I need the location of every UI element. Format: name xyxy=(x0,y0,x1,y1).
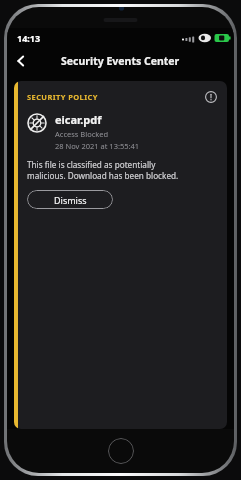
staticText: This file is classified as potentially m… xyxy=(27,159,179,181)
staticText: eicar.pdf xyxy=(55,112,102,127)
staticText: Dismiss xyxy=(54,194,87,206)
staticText: SECURITY POLICY xyxy=(27,92,98,102)
button[interactable]: Dismiss xyxy=(27,190,113,209)
button[interactable]: SECURITY POLICY xyxy=(14,81,227,429)
staticText: Access Blocked xyxy=(55,129,109,139)
staticText: Security Events Center xyxy=(61,54,180,68)
button[interactable]: Back xyxy=(8,48,34,74)
staticText: 14:13 xyxy=(17,32,41,44)
button[interactable]: More information xyxy=(203,89,219,105)
button[interactable]: Home xyxy=(108,438,134,464)
staticText: 28 Nov 2021 at 13:55:41 xyxy=(55,141,140,151)
